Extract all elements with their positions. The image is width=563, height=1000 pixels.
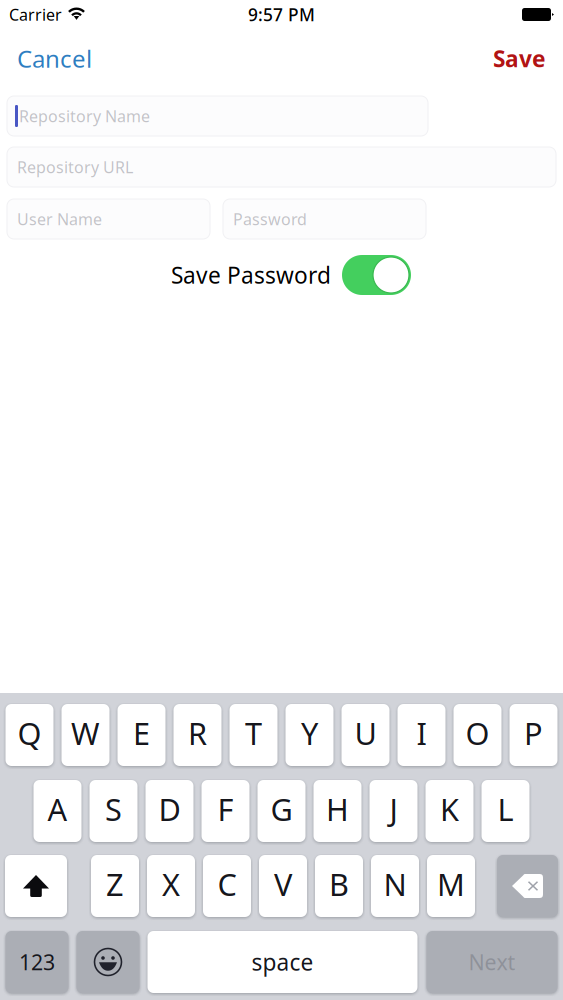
button[interactable]: J [369, 780, 417, 842]
button[interactable]: C [203, 855, 251, 917]
button[interactable]: K [425, 780, 473, 842]
button[interactable]: Shift [5, 855, 67, 917]
staticText: Next [468, 948, 515, 976]
staticText: Password [233, 208, 307, 230]
button[interactable]: U [341, 704, 389, 766]
staticText: R [188, 713, 207, 753]
button[interactable]: W [61, 704, 109, 766]
staticText: M [437, 864, 465, 904]
button[interactable]: Save [479, 34, 563, 90]
staticText: K [440, 789, 459, 829]
staticText: Z [106, 864, 124, 904]
button[interactable]: B [315, 855, 363, 917]
staticText: E [133, 713, 150, 753]
staticText: H [326, 789, 349, 829]
button[interactable]: S [89, 780, 137, 842]
button[interactable]: Delete [497, 855, 558, 917]
staticText: Q [17, 713, 41, 753]
staticText: N [383, 864, 406, 904]
button[interactable]: D [145, 780, 193, 842]
button[interactable]: Y [285, 704, 333, 766]
button[interactable]: E [117, 704, 165, 766]
button[interactable]: X [147, 855, 195, 917]
staticText: L [497, 789, 513, 829]
button[interactable]: Repository URL [7, 147, 556, 187]
button[interactable]: M [427, 855, 475, 917]
staticText: T [245, 713, 262, 753]
button[interactable]: A [33, 780, 81, 842]
staticText: C [217, 864, 236, 904]
staticText: Repository Name [19, 105, 150, 127]
staticText: O [465, 713, 489, 753]
button[interactable]: Q [5, 704, 53, 766]
staticText: B [329, 864, 349, 904]
staticText: space [251, 947, 313, 977]
staticText: Save [493, 43, 546, 73]
button[interactable]: Save Password [342, 255, 411, 295]
button[interactable]: Repository Name [7, 96, 428, 136]
button[interactable]: User Name [7, 199, 210, 239]
staticText: D [158, 789, 180, 829]
staticText: 123 [19, 948, 55, 976]
staticText: A [47, 789, 67, 829]
button[interactable]: Cancel [0, 34, 106, 91]
button[interactable]: L [481, 780, 529, 842]
button[interactable]: T [229, 704, 277, 766]
staticText: S [105, 789, 122, 829]
staticText: Carrier [9, 4, 62, 25]
button[interactable]: O [453, 704, 501, 766]
button[interactable]: I [397, 704, 445, 766]
button[interactable]: Emoji [76, 931, 139, 993]
button[interactable]: N [371, 855, 419, 917]
staticText: I [416, 713, 426, 753]
staticText: X [162, 864, 180, 904]
button[interactable]: Z [91, 855, 139, 917]
staticText: Cancel [17, 43, 92, 74]
staticText: U [354, 713, 376, 753]
staticText: Y [301, 713, 318, 753]
button[interactable]: F [201, 780, 249, 842]
button[interactable]: R [173, 704, 221, 766]
button[interactable]: Next [426, 931, 557, 993]
button[interactable]: G [257, 780, 305, 842]
staticText: Repository URL [17, 156, 133, 178]
staticText: F [217, 789, 233, 829]
staticText: P [524, 713, 543, 753]
button[interactable]: space [147, 931, 417, 993]
button[interactable]: 123 [5, 931, 68, 993]
staticText: V [274, 864, 292, 904]
button[interactable]: P [509, 704, 557, 766]
staticText: User Name [17, 208, 102, 230]
staticText: 9:57 PM [248, 3, 315, 26]
button[interactable]: Password [223, 199, 426, 239]
staticText: J [389, 789, 397, 829]
button[interactable]: V [259, 855, 307, 917]
staticText: Save Password [171, 260, 331, 290]
staticText: W [71, 713, 100, 753]
staticText: G [270, 789, 292, 829]
button[interactable]: H [313, 780, 361, 842]
